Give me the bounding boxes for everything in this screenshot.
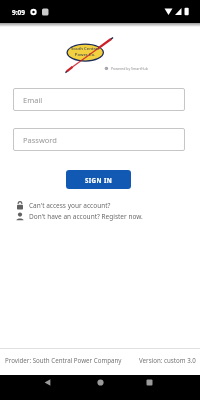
- staticText: Version: custom 3.0: [139, 356, 196, 364]
- button[interactable]: Don't have an account? Register now.: [16, 211, 143, 222]
- button[interactable]: [142, 375, 157, 390]
- button[interactable]: Password: [13, 128, 185, 151]
- button[interactable]: [40, 375, 55, 390]
- staticText: Password: [23, 135, 57, 145]
- staticText: Power Co.: [58, 52, 112, 58]
- staticText: Email: [23, 95, 43, 105]
- staticText: 9:09: [12, 8, 25, 17]
- staticText: Provider: South Central Power Company: [5, 356, 122, 364]
- staticText: Powered by SmartHub: [111, 66, 148, 71]
- staticText: SIGN IN: [85, 176, 113, 184]
- button[interactable]: [93, 375, 108, 390]
- button[interactable]: Email: [13, 88, 185, 111]
- button[interactable]: SIGN IN: [66, 170, 131, 189]
- staticText: Can't access your account?: [29, 201, 111, 210]
- staticText: Don't have an account? Register now.: [29, 212, 143, 221]
- button[interactable]: Can't access your account?: [16, 200, 111, 211]
- staticText: South Central: [58, 46, 112, 52]
